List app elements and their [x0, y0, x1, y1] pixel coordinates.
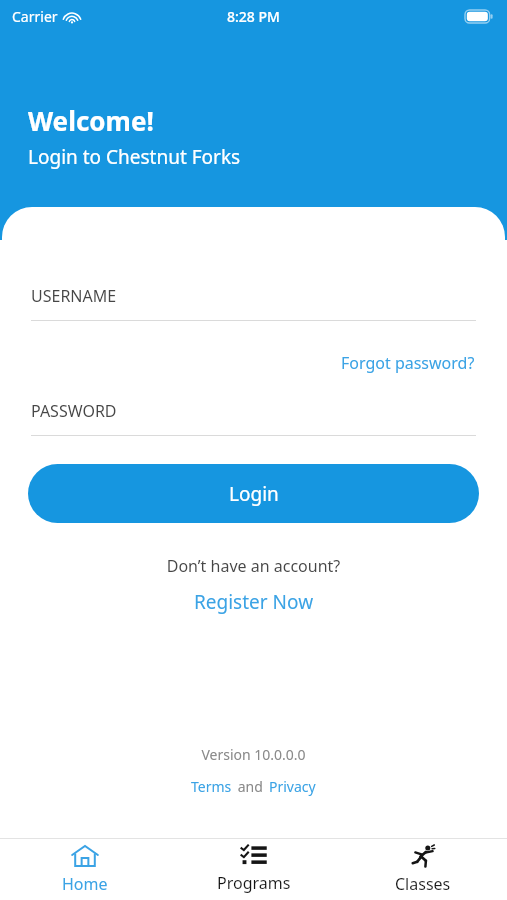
staticText: Forgot password? — [341, 352, 475, 374]
staticText: Classes — [395, 873, 451, 895]
staticText: Register Now — [194, 589, 314, 615]
staticText: Don’t have an account? — [2, 555, 505, 577]
staticText: Carrier — [12, 7, 58, 26]
staticText: and — [234, 777, 267, 796]
staticText: Programs — [217, 872, 291, 894]
staticText: Version 10.0.0.0 — [2, 745, 505, 764]
staticText: Login — [229, 481, 279, 507]
staticText: Welcome! — [28, 103, 154, 138]
staticText: Login to Chestnut Forks — [28, 144, 241, 170]
staticText: Terms — [191, 777, 232, 796]
staticText: PASSWORD — [31, 400, 117, 422]
button[interactable]: Classes — [338, 839, 507, 900]
staticText: Privacy — [269, 777, 316, 796]
staticText: Home — [62, 873, 108, 895]
button[interactable]: Home — [0, 839, 169, 900]
button[interactable]: Programs — [169, 839, 338, 900]
staticText: 8:28 PM — [227, 7, 280, 26]
button[interactable]: Login — [28, 464, 479, 523]
button[interactable]: Privacy — [267, 777, 318, 796]
button[interactable]: Register Now — [188, 587, 320, 617]
button[interactable]: Forgot password? — [339, 350, 477, 376]
button[interactable]: Terms — [189, 777, 234, 796]
staticText: USERNAME — [31, 285, 117, 307]
